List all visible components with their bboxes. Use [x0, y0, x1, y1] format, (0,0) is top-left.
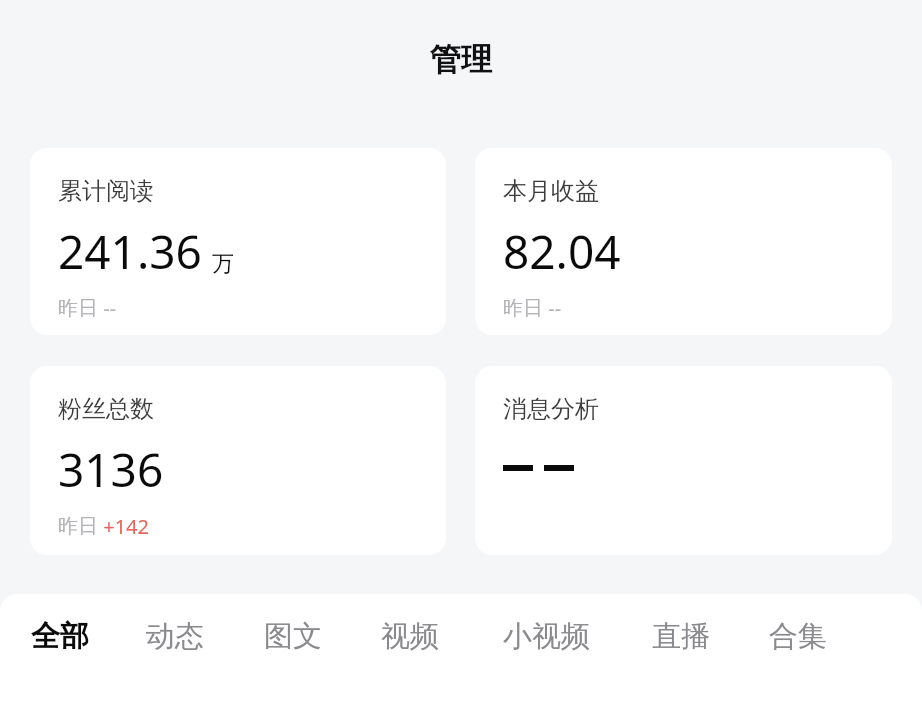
button[interactable]: 视频: [380, 616, 440, 657]
staticText: 万: [212, 250, 234, 278]
button[interactable]: 粉丝总数: [30, 366, 446, 555]
button[interactable]: 全部: [30, 616, 90, 657]
button[interactable]: 累计阅读: [30, 148, 446, 335]
button[interactable]: 小视频: [502, 616, 591, 657]
staticText: 动态: [146, 618, 204, 655]
staticText: 本月收益: [503, 176, 599, 206]
button[interactable]: 消息分析: [475, 366, 892, 555]
staticText: --: [98, 295, 117, 322]
staticText: 消息分析: [503, 394, 599, 424]
staticText: 小视频: [503, 618, 590, 655]
staticText: 昨日: [58, 296, 98, 321]
staticText: 昨日: [503, 296, 543, 321]
staticText: 全部: [31, 618, 89, 655]
staticText: 管理: [0, 40, 922, 79]
button[interactable]: 动态: [145, 616, 205, 657]
staticText: 直播: [652, 618, 710, 655]
staticText: 82.04: [503, 220, 621, 283]
button[interactable]: 本月收益: [475, 148, 892, 335]
staticText: 241.36: [58, 220, 202, 283]
button[interactable]: 图文: [263, 616, 323, 657]
button[interactable]: 合集: [768, 616, 828, 657]
staticText: 图文: [264, 618, 322, 655]
staticText: 累计阅读: [58, 176, 154, 206]
staticText: --: [543, 295, 562, 322]
button[interactable]: 直播: [651, 616, 711, 657]
staticText: +142: [98, 513, 149, 540]
staticText: 合集: [769, 618, 827, 655]
staticText: 视频: [381, 618, 439, 655]
staticText: 粉丝总数: [58, 394, 154, 424]
staticText: 3136: [58, 438, 164, 501]
staticText: 昨日: [58, 514, 98, 539]
